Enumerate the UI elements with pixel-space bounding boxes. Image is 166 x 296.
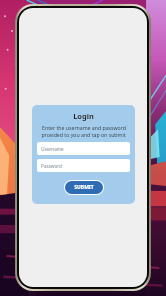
button[interactable]: Username bbox=[37, 142, 130, 155]
button[interactable]: Password bbox=[37, 159, 130, 172]
button[interactable]: SUBMIT bbox=[65, 181, 103, 194]
staticText: SUBMIT bbox=[74, 184, 94, 191]
staticText: Password bbox=[41, 163, 62, 169]
staticText: Username bbox=[41, 146, 64, 152]
staticText: provided to you and tap on submit bbox=[41, 131, 126, 138]
staticText: Login bbox=[73, 111, 94, 121]
staticText: Enter the username and password bbox=[42, 124, 126, 131]
